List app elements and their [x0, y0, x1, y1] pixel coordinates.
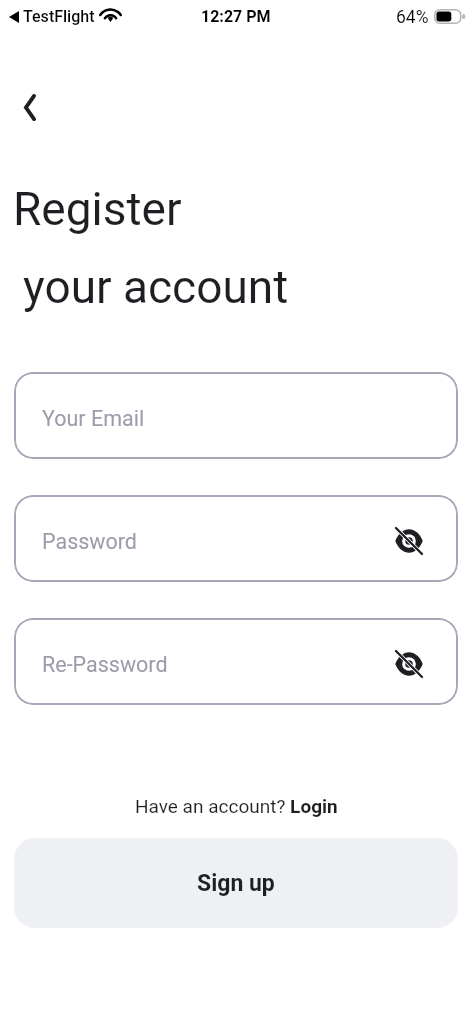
- staticText: your account: [23, 260, 289, 314]
- button[interactable]: Back: [6, 83, 54, 131]
- staticText: TestFlight: [23, 7, 95, 26]
- button[interactable]: Password: [14, 495, 458, 582]
- button[interactable]: Sign up: [14, 838, 458, 928]
- button[interactable]: Toggle password visibility: [388, 643, 430, 685]
- staticText: 12:27 PM: [201, 7, 271, 26]
- button[interactable]: Toggle password visibility: [388, 520, 430, 562]
- staticText: Password: [42, 529, 137, 554]
- staticText: Sign up: [197, 870, 275, 897]
- staticText: Register: [13, 182, 182, 236]
- button[interactable]: Re-Password: [14, 618, 458, 705]
- button[interactable]: Have an account? Login: [129, 789, 344, 823]
- button[interactable]: Your Email: [14, 372, 458, 459]
- staticText: Re-Password: [42, 652, 168, 677]
- staticText: Your Email: [42, 406, 145, 431]
- staticText: 64%: [396, 7, 429, 28]
